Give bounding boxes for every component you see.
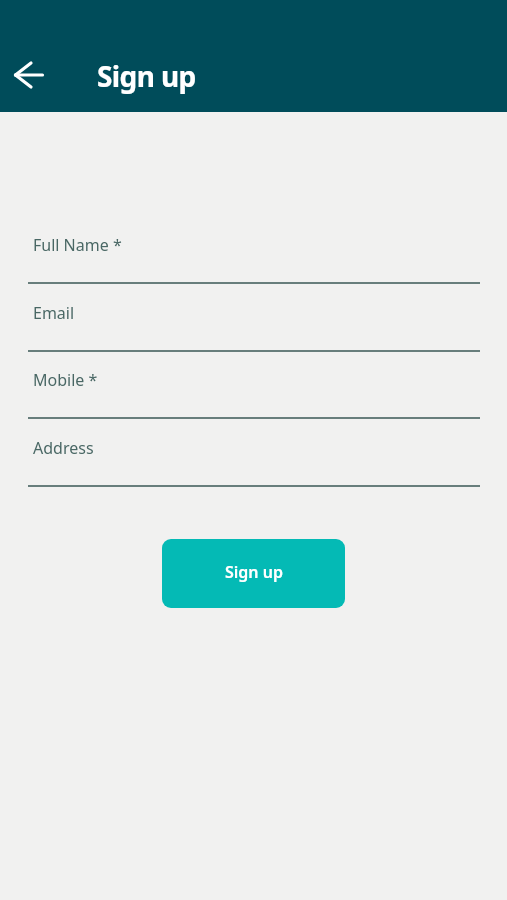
button[interactable]: Address (28, 429, 480, 487)
staticText: Full Name * (33, 234, 122, 256)
button[interactable]: Sign up (162, 539, 345, 608)
staticText: Sign up (97, 57, 196, 95)
button[interactable]: Email (28, 294, 480, 352)
button[interactable]: Full Name * (28, 226, 480, 284)
staticText: Mobile * (33, 369, 98, 391)
staticText: Email (33, 302, 75, 324)
staticText: Address (33, 437, 94, 459)
staticText: Sign up (225, 561, 283, 583)
button[interactable]: Mobile * (28, 361, 480, 419)
button[interactable]: Back (0, 47, 56, 103)
